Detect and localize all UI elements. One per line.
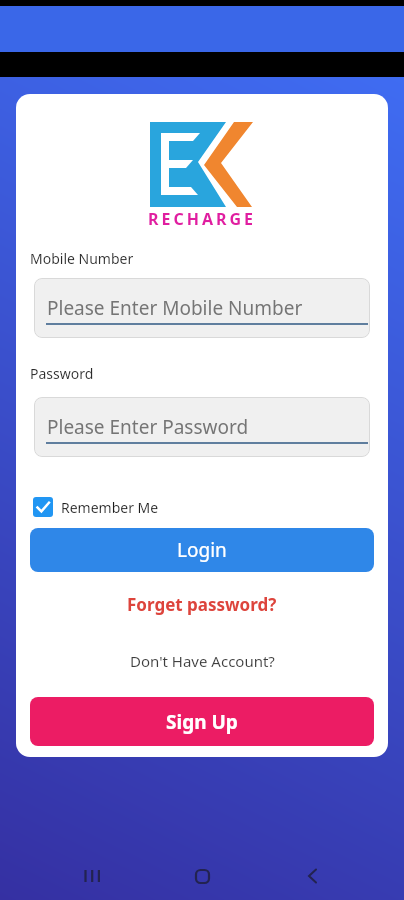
staticText: Sign Up xyxy=(166,709,238,735)
staticText: RECHARGE xyxy=(148,208,257,230)
staticText: Don't Have Account? xyxy=(130,651,275,671)
button[interactable]: Remember Me xyxy=(30,497,374,517)
button[interactable]: Forget password? xyxy=(127,593,277,616)
button[interactable]: Please Enter Password xyxy=(34,397,370,457)
staticText: Please Enter Password xyxy=(47,414,249,440)
button[interactable] xyxy=(288,852,336,900)
staticText: Remember Me xyxy=(61,498,159,517)
button[interactable]: Sign Up xyxy=(30,697,374,746)
button[interactable]: Please Enter Mobile Number xyxy=(34,278,370,338)
button[interactable] xyxy=(68,852,116,900)
staticText: Password xyxy=(30,364,94,383)
staticText: Forget password? xyxy=(127,593,277,616)
staticText: Login xyxy=(177,537,227,563)
staticText: Please Enter Mobile Number xyxy=(47,295,303,321)
button[interactable] xyxy=(178,852,226,900)
button[interactable]: Login xyxy=(30,528,374,572)
staticText: Mobile Number xyxy=(30,249,134,268)
